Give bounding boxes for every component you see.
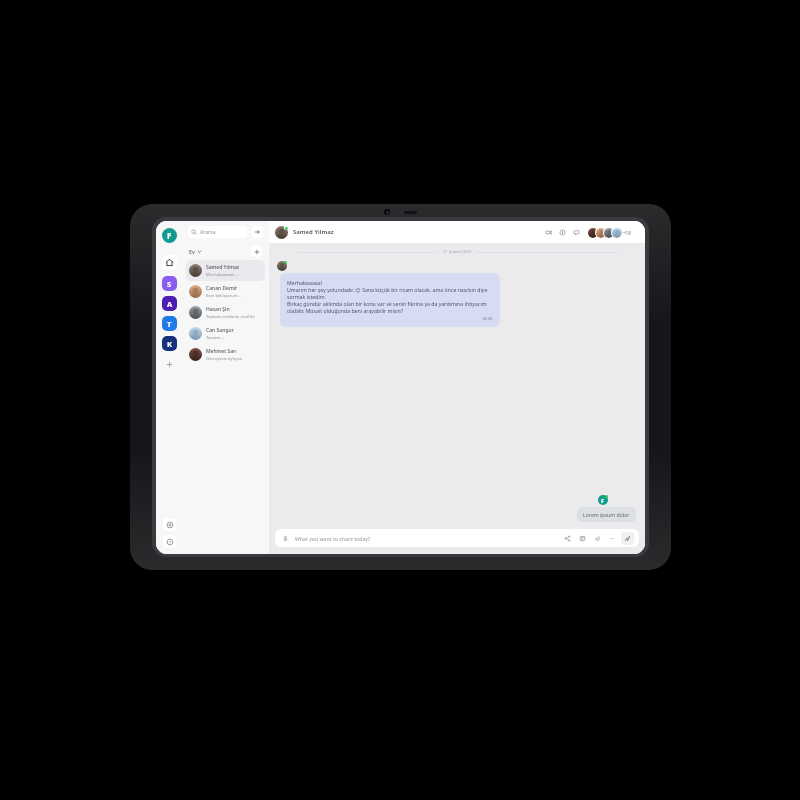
staticText: Arama [200, 229, 216, 236]
button[interactable]: Lorem ipsum dolor [577, 507, 636, 522]
button[interactable]: Merhabaaaaa! [280, 273, 500, 327]
staticText: Canan Demir [206, 285, 238, 292]
button[interactable]: Voice message [280, 533, 291, 544]
button[interactable]: Settings [163, 518, 176, 531]
button[interactable]: Home [162, 255, 177, 270]
staticText: +18 [623, 230, 631, 236]
button[interactable]: Arama [191, 226, 244, 238]
button[interactable]: Members [587, 227, 639, 238]
staticText: T [167, 319, 172, 329]
staticText: Hasan Şin [206, 306, 230, 313]
staticText: Birkaç gündür aklımda olan bir konu var … [287, 300, 493, 314]
button[interactable]: Ev [189, 243, 262, 259]
button[interactable]: Template [577, 533, 588, 544]
button[interactable]: S [162, 276, 177, 291]
button[interactable]: Add workspace [163, 358, 176, 371]
staticText: A [167, 299, 173, 309]
staticText: What you want to share today? [295, 535, 371, 542]
staticText: Merhabaaaaa!... [206, 272, 238, 278]
staticText: Mehmet Sarı [206, 348, 237, 355]
staticText: 14:33 [482, 316, 493, 321]
button[interactable]: Hasan Şin [186, 302, 265, 323]
button[interactable]: Info [557, 227, 568, 238]
staticText: Ev [189, 248, 195, 255]
staticText: Can Sungur [206, 327, 234, 334]
staticText: Umarım her şey yolundadır. 😊 Sana küçük … [287, 286, 493, 300]
staticText: Merhabaaaaa! [287, 279, 323, 286]
button[interactable]: T [162, 316, 177, 331]
button[interactable]: More options [607, 533, 618, 544]
staticText: F [167, 230, 172, 241]
staticText: Samed Yılmaz [206, 264, 240, 271]
button[interactable]: Messages [571, 227, 582, 238]
staticText: F [601, 497, 605, 504]
button[interactable]: A [162, 296, 177, 311]
button[interactable]: Can Sungur [186, 323, 265, 344]
button[interactable]: Video call [543, 227, 554, 238]
button[interactable]: Help [163, 535, 176, 548]
button[interactable]: New chat [251, 246, 262, 257]
staticText: S [167, 279, 172, 289]
staticText: Lorem ipsum dolor [583, 511, 630, 518]
button[interactable]: Mehmet Sarı [186, 344, 265, 365]
button[interactable]: K [162, 336, 177, 351]
button[interactable]: Canan Demir [186, 281, 265, 302]
staticText: Seni bekliyorum... [206, 293, 242, 299]
staticText: 21 Şubat 2024 [443, 249, 471, 255]
button[interactable]: Send [621, 532, 634, 545]
staticText: Tamam... [206, 335, 224, 341]
staticText: Samed Yılmaz [293, 228, 334, 236]
staticText: Toplantı notlarını mail ile ilettim [206, 314, 262, 320]
button[interactable]: Attach [592, 533, 603, 544]
button[interactable]: Samed Yılmaz [186, 260, 265, 281]
staticText: Görüşürüz öyleyse [206, 356, 243, 362]
button[interactable]: Profile [162, 228, 177, 243]
button[interactable]: Share [562, 533, 573, 544]
button[interactable]: Go [251, 226, 263, 238]
staticText: K [167, 339, 172, 349]
